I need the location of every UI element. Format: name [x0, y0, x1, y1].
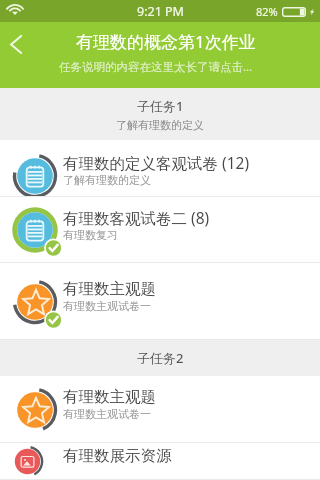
staticText: 了解有理数的定义	[116, 118, 204, 132]
button[interactable]: 有理数客观试卷二 (8)	[0, 197, 320, 263]
button[interactable]: Back	[0, 22, 38, 66]
button[interactable]: 有理数主观题	[0, 263, 320, 340]
staticText: 了解有理数的定义	[63, 173, 151, 187]
staticText: 有理数客观试卷二 (8)	[63, 207, 210, 228]
button[interactable]: 有理数主观题	[0, 376, 320, 443]
staticText: 有理数主观试卷一	[63, 299, 151, 313]
staticText: 子任务2	[137, 349, 184, 367]
staticText: 子任务1	[137, 97, 184, 115]
staticText: 有理数主观题	[63, 387, 156, 407]
staticText: 82%	[256, 4, 278, 19]
staticText: 有理数主观试卷一	[63, 407, 151, 421]
staticText: 有理数复习	[63, 228, 118, 242]
staticText: 有理数的定义客观试卷 (12)	[63, 152, 250, 173]
button[interactable]: 有理数的定义客观试卷 (12)	[0, 140, 320, 197]
staticText: 任务说明的内容在这里太长了请点击…	[59, 59, 253, 75]
button[interactable]: 有理数展示资源	[0, 443, 320, 480]
staticText: 有理数展示资源	[63, 446, 172, 466]
staticText: 有理数的概念第1次作业	[76, 30, 256, 53]
staticText: 9:21 PM	[137, 3, 184, 20]
staticText: 有理数主观题	[63, 279, 156, 299]
